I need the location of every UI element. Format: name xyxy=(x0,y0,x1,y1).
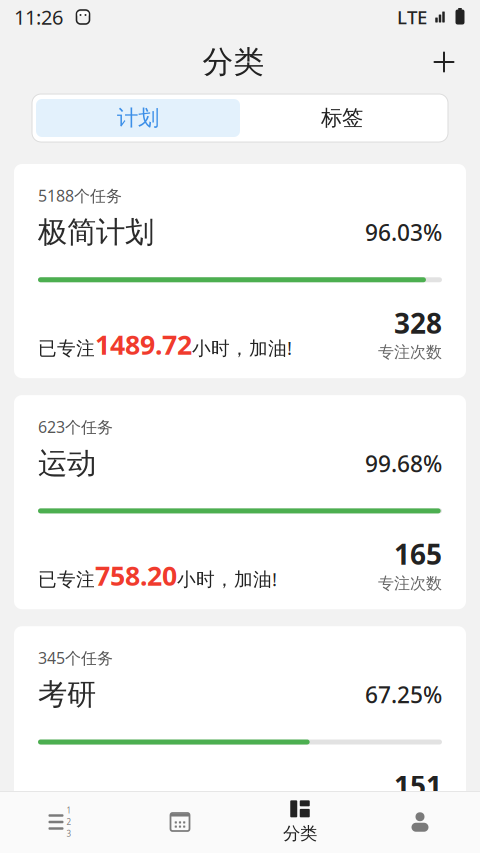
staticText: 计划 xyxy=(117,105,159,131)
button[interactable]: 任务 xyxy=(0,791,120,853)
staticText: 151 xyxy=(394,766,442,804)
staticText: 623个任务 xyxy=(38,416,113,437)
staticText: 1489.72 xyxy=(95,327,192,362)
staticText: 已专注 xyxy=(38,799,95,822)
staticText: 已专注 xyxy=(38,568,95,591)
staticText: 99.68% xyxy=(365,448,442,478)
staticText: 758.20 xyxy=(95,558,177,593)
staticText: 小时，加油! xyxy=(192,335,292,360)
staticText: 小时，加油! xyxy=(177,566,277,591)
staticText: 328 xyxy=(394,304,442,341)
staticText: 2 xyxy=(66,817,71,827)
staticText: 分类 xyxy=(283,823,317,844)
staticText: 11:26 xyxy=(14,4,63,30)
button[interactable]: 计划 xyxy=(36,99,240,137)
button[interactable]: 我的 xyxy=(360,791,480,853)
button[interactable]: 623个任务 xyxy=(14,395,466,609)
staticText: 5188个任务 xyxy=(38,185,122,206)
staticText: 专注次数 xyxy=(378,342,442,362)
staticText: 极简计划 xyxy=(38,214,154,250)
staticText: 专注次数 xyxy=(378,574,442,593)
staticText: 考研 xyxy=(38,676,96,712)
staticText: LTE xyxy=(397,5,427,29)
button[interactable]: 345个任务 xyxy=(14,626,466,840)
staticText: 1 xyxy=(66,805,71,816)
button[interactable]: 5188个任务 xyxy=(14,164,466,378)
staticText: 分类 xyxy=(202,43,264,81)
staticText: 165 xyxy=(394,535,442,573)
staticText: 966.57 xyxy=(95,789,177,824)
button[interactable]: 标签 xyxy=(240,99,444,137)
button[interactable]: 日历 xyxy=(120,791,240,853)
staticText: 3 xyxy=(66,828,71,839)
staticText: 67.25% xyxy=(365,679,442,709)
staticText: 运动 xyxy=(38,445,96,481)
staticText: 小时，加油! xyxy=(177,798,277,822)
staticText: 96.03% xyxy=(365,217,442,247)
staticText: 345个任务 xyxy=(38,647,113,668)
button[interactable]: 添加分类 xyxy=(421,39,467,85)
button[interactable]: 分类 xyxy=(240,791,360,853)
staticText: 标签 xyxy=(321,105,363,131)
staticText: 专注次数 xyxy=(378,805,442,824)
staticText: 已专注 xyxy=(38,337,95,360)
